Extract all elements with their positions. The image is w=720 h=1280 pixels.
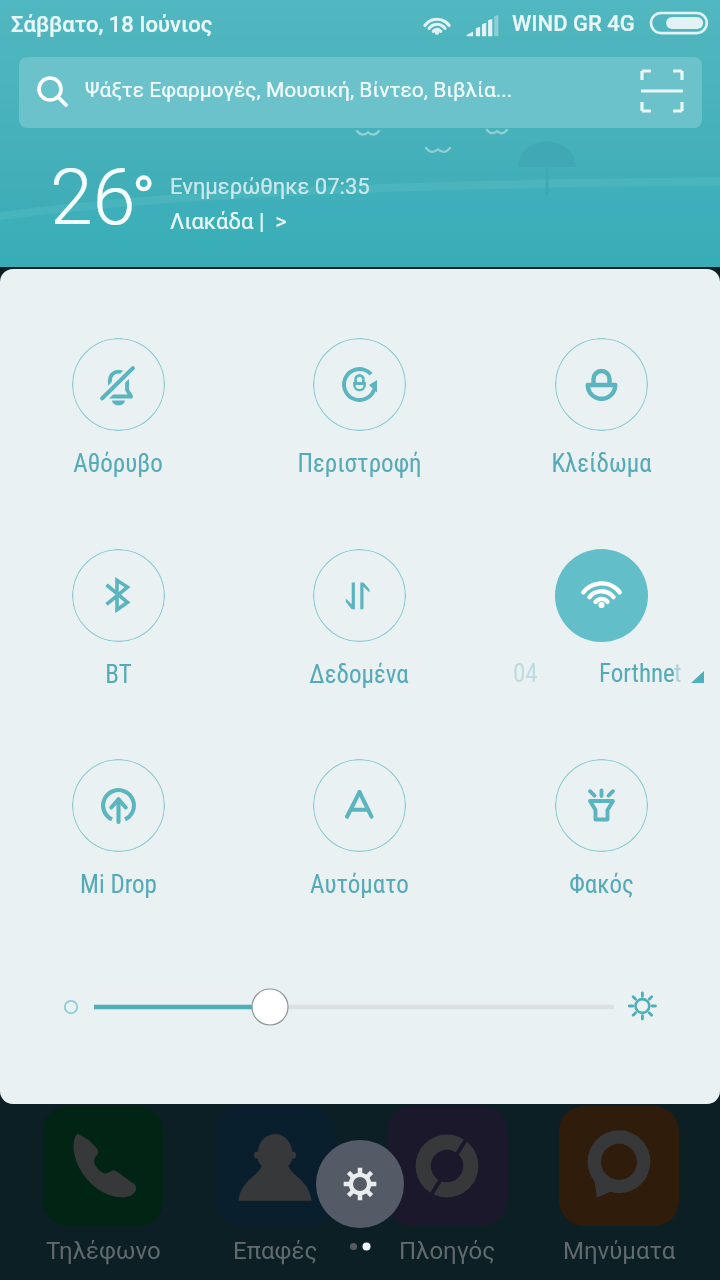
staticText: 04 <box>513 659 538 688</box>
staticText: BT <box>105 660 132 689</box>
staticText: Κλείδωμα <box>551 449 652 478</box>
button[interactable]: Forthnet <box>521 549 681 642</box>
staticText: Τηλέφωνο <box>46 1237 161 1265</box>
staticText: Forthne <box>599 659 675 688</box>
staticText: Ενημερώθηκε 07:35 <box>170 174 370 200</box>
button[interactable]: Πλοηγός <box>372 1106 522 1265</box>
staticText: 26 <box>50 153 136 243</box>
button[interactable]: Brightness <box>0 977 720 1047</box>
staticText: Ψάξτε Εφαρμογές, Μουσική, Βίντεο, Βιβλία… <box>85 78 513 103</box>
staticText: Μηνύματα <box>563 1237 676 1265</box>
staticText: Δεδομένα <box>309 660 409 689</box>
button[interactable]: Settings <box>316 1140 404 1228</box>
button[interactable]: Αθόρυβο <box>38 338 198 478</box>
button[interactable]: Τηλέφωνο <box>28 1106 178 1265</box>
button[interactable]: Ψάξτε Εφαρμογές, Μουσική, Βίντεο, Βιβλία… <box>19 57 702 128</box>
button[interactable]: Mi Drop <box>38 759 198 899</box>
button[interactable]: Φακός <box>521 759 681 899</box>
button[interactable]: Δεδομένα <box>279 549 439 689</box>
staticText: Περιστροφή <box>297 449 422 478</box>
staticText: Αυτόματο <box>310 870 409 899</box>
staticText: Σάββατο, 18 Ιούνιος <box>11 12 213 38</box>
staticText: t <box>674 659 682 688</box>
button[interactable]: Περιστροφή <box>279 338 439 478</box>
button[interactable]: Μηνύματα <box>544 1106 694 1265</box>
button[interactable]: Κλείδωμα <box>521 338 681 478</box>
staticText: Mi Drop <box>80 870 157 899</box>
staticText: Πλοηγός <box>399 1237 496 1265</box>
staticText: Αθόρυβο <box>73 449 163 478</box>
staticText: Λιακάδα | > <box>170 209 287 235</box>
button[interactable]: Αυτόματο <box>279 759 439 899</box>
staticText: Επαφές <box>233 1237 318 1265</box>
staticText: WIND GR 4G <box>512 11 635 37</box>
button[interactable]: Επαφές <box>200 1106 350 1265</box>
staticText: Φακός <box>569 870 634 899</box>
button[interactable]: BT <box>38 549 198 689</box>
